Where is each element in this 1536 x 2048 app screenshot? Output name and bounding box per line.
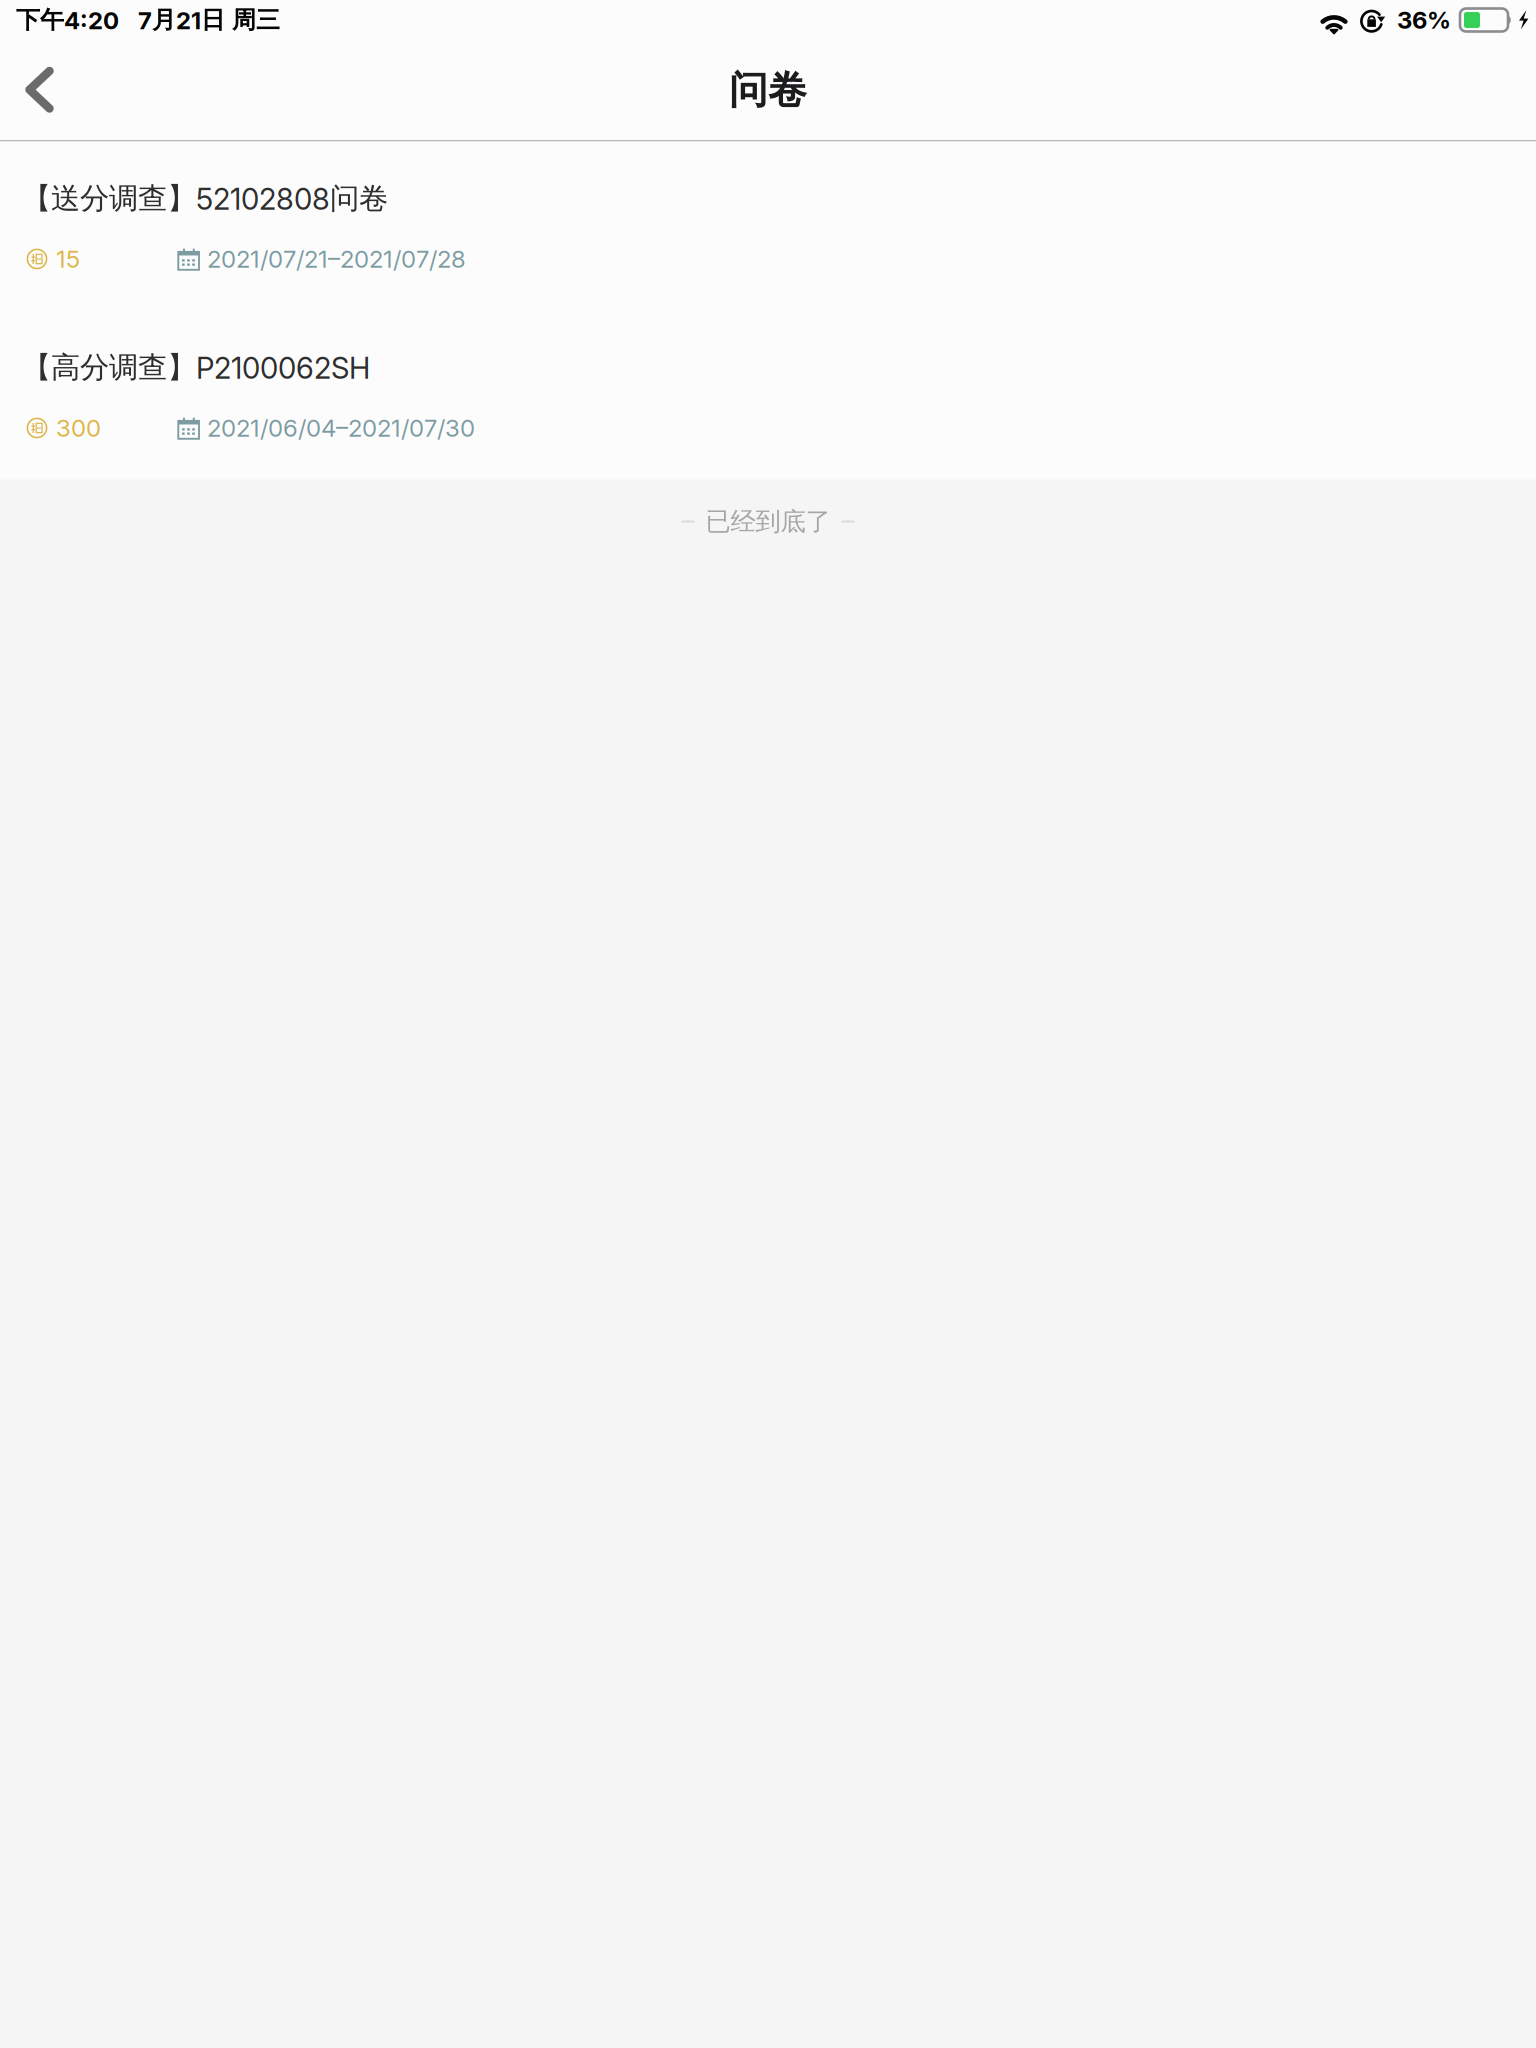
staticText: 15	[56, 244, 80, 273]
button[interactable]: 【高分调查】P2100062SH	[0, 310, 1536, 479]
staticText: 2021/06/04–2021/07/30	[207, 413, 475, 442]
button[interactable]: 【送分调查】52102808问卷	[0, 141, 1536, 310]
staticText: 已经到底了	[705, 505, 830, 537]
staticText: 问卷	[729, 66, 807, 114]
staticText: 2021/07/21–2021/07/28	[207, 244, 466, 273]
button[interactable]: Back	[0, 40, 76, 140]
staticText: 7月21日 周三	[138, 5, 280, 35]
staticText: 下午4:20	[16, 5, 119, 35]
staticText: 36%	[1397, 5, 1451, 34]
staticText: 【高分调查】P2100062SH	[22, 349, 370, 386]
staticText: 300	[56, 413, 101, 442]
staticText: 【送分调查】52102808问卷	[22, 180, 388, 217]
